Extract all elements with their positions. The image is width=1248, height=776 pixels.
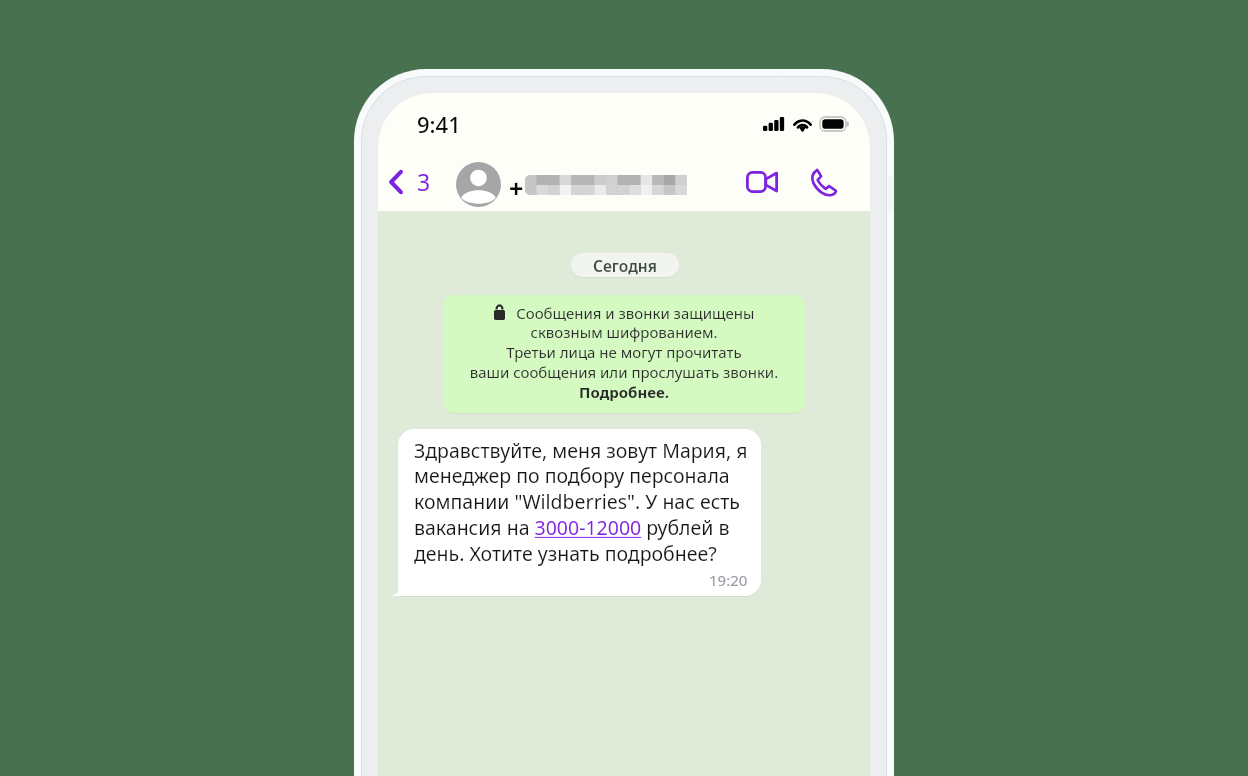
staticText: 3 (417, 166, 431, 197)
button[interactable]: Contact avatar (456, 162, 501, 207)
staticText: 19:20 (709, 570, 748, 590)
button[interactable]: Сообщения и звонки защищены сквозным шиф… (443, 295, 805, 413)
staticText: 9:41 (417, 109, 461, 139)
button[interactable]: Back, 3 unread (380, 152, 441, 212)
staticText: Здравствуйте, меня зовут Мария, я менедж… (414, 437, 748, 567)
staticText: + (509, 171, 524, 205)
button[interactable]: Call (798, 160, 848, 204)
staticText: Сообщения и звонки защищены сквозным шиф… (443, 303, 805, 403)
button[interactable]: Video call (730, 160, 794, 204)
staticText: Сегодня (593, 255, 657, 276)
button[interactable]: Здравствуйте, меня зовут Мария, я менедж… (398, 429, 761, 596)
button[interactable]: Сегодня (571, 253, 679, 277)
